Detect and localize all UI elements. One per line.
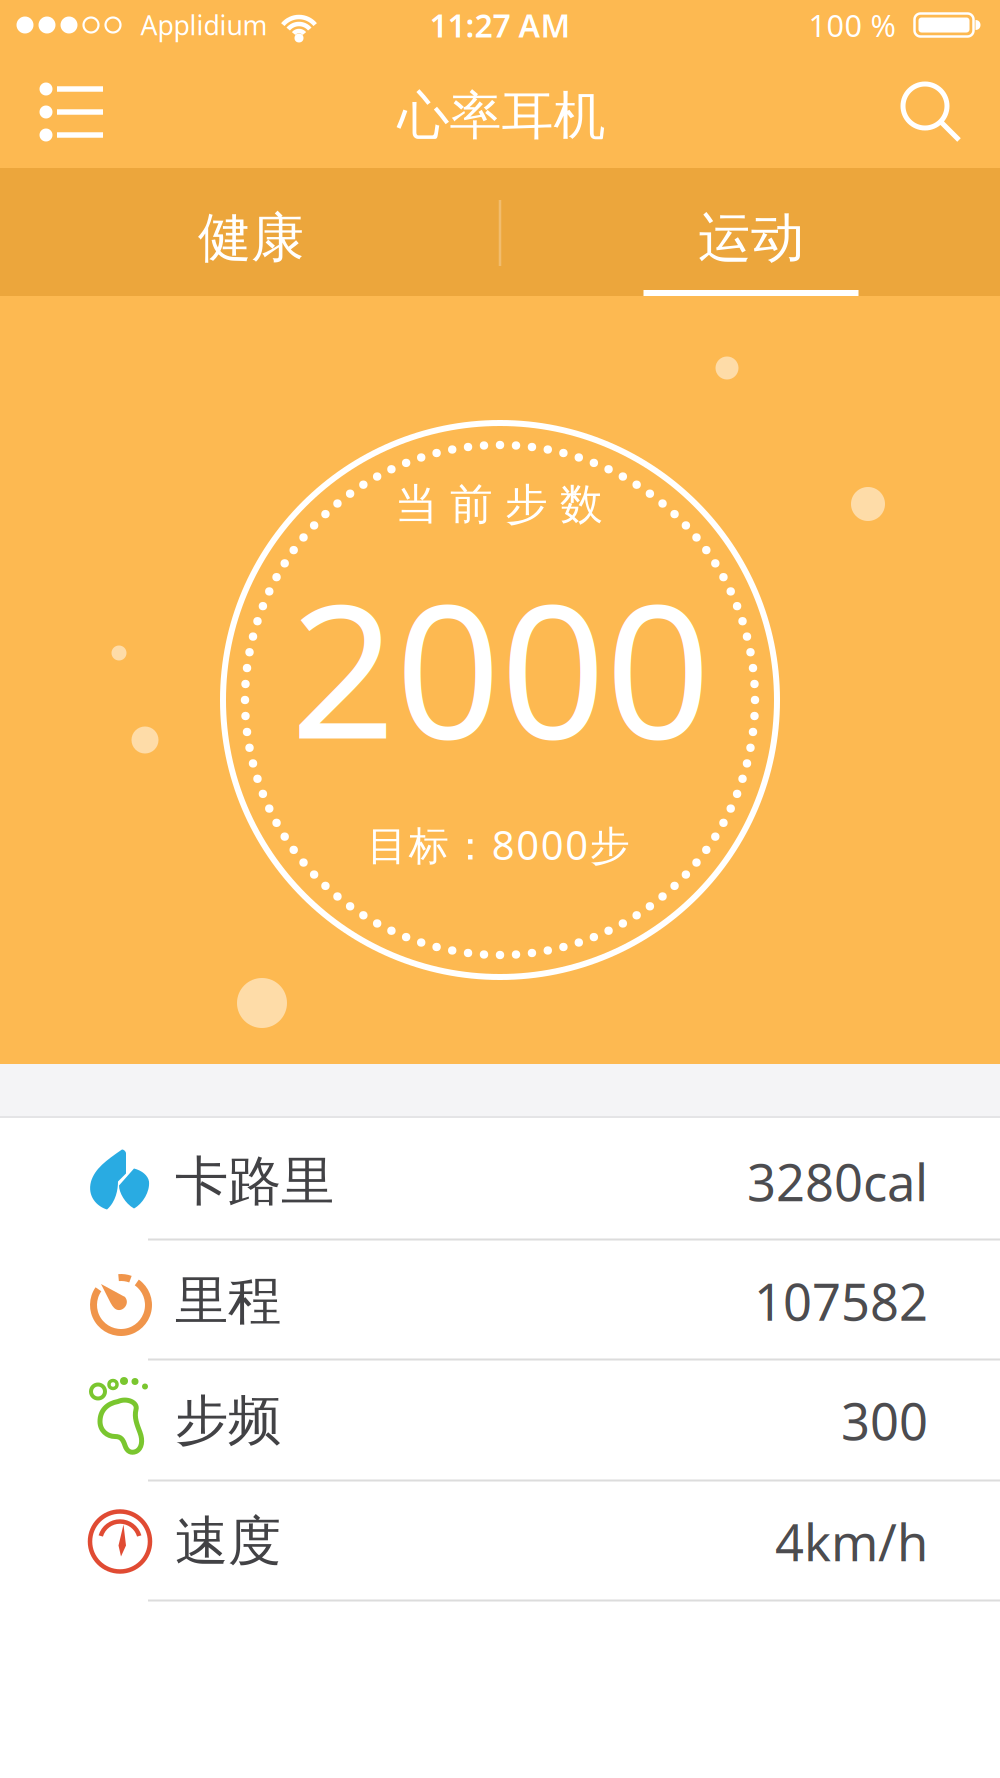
staticText: 运动 [698, 205, 804, 271]
button[interactable]: 速度 [0, 1481, 1000, 1601]
staticText: Applidium [140, 7, 267, 43]
staticText: 卡路里 [175, 1149, 334, 1214]
staticText: 4km/h [775, 1508, 928, 1575]
button[interactable]: Menu [26, 67, 116, 157]
staticText: 11:27 AM [429, 4, 570, 46]
staticText: 目标：8000步 [367, 818, 630, 871]
staticText: 3280cal [747, 1148, 928, 1215]
staticText: 100 % [808, 5, 895, 45]
button[interactable]: 步频 [0, 1360, 1000, 1480]
staticText: 健康 [198, 205, 304, 271]
button[interactable]: 运动 [501, 168, 999, 296]
button[interactable]: 健康 [1, 168, 499, 296]
staticText: 300 [841, 1387, 928, 1454]
staticText: 当前步数 [395, 478, 603, 531]
staticText: 心率耳机 [397, 84, 605, 148]
staticText: 速度 [175, 1509, 281, 1574]
button[interactable]: Search [880, 67, 970, 157]
staticText: 107582 [754, 1267, 928, 1335]
staticText: 里程 [175, 1268, 281, 1334]
button[interactable]: 卡路里 [0, 1121, 1000, 1241]
staticText: 2000 [290, 545, 710, 789]
staticText: 步频 [175, 1388, 281, 1453]
button[interactable]: 里程 [0, 1241, 1000, 1361]
